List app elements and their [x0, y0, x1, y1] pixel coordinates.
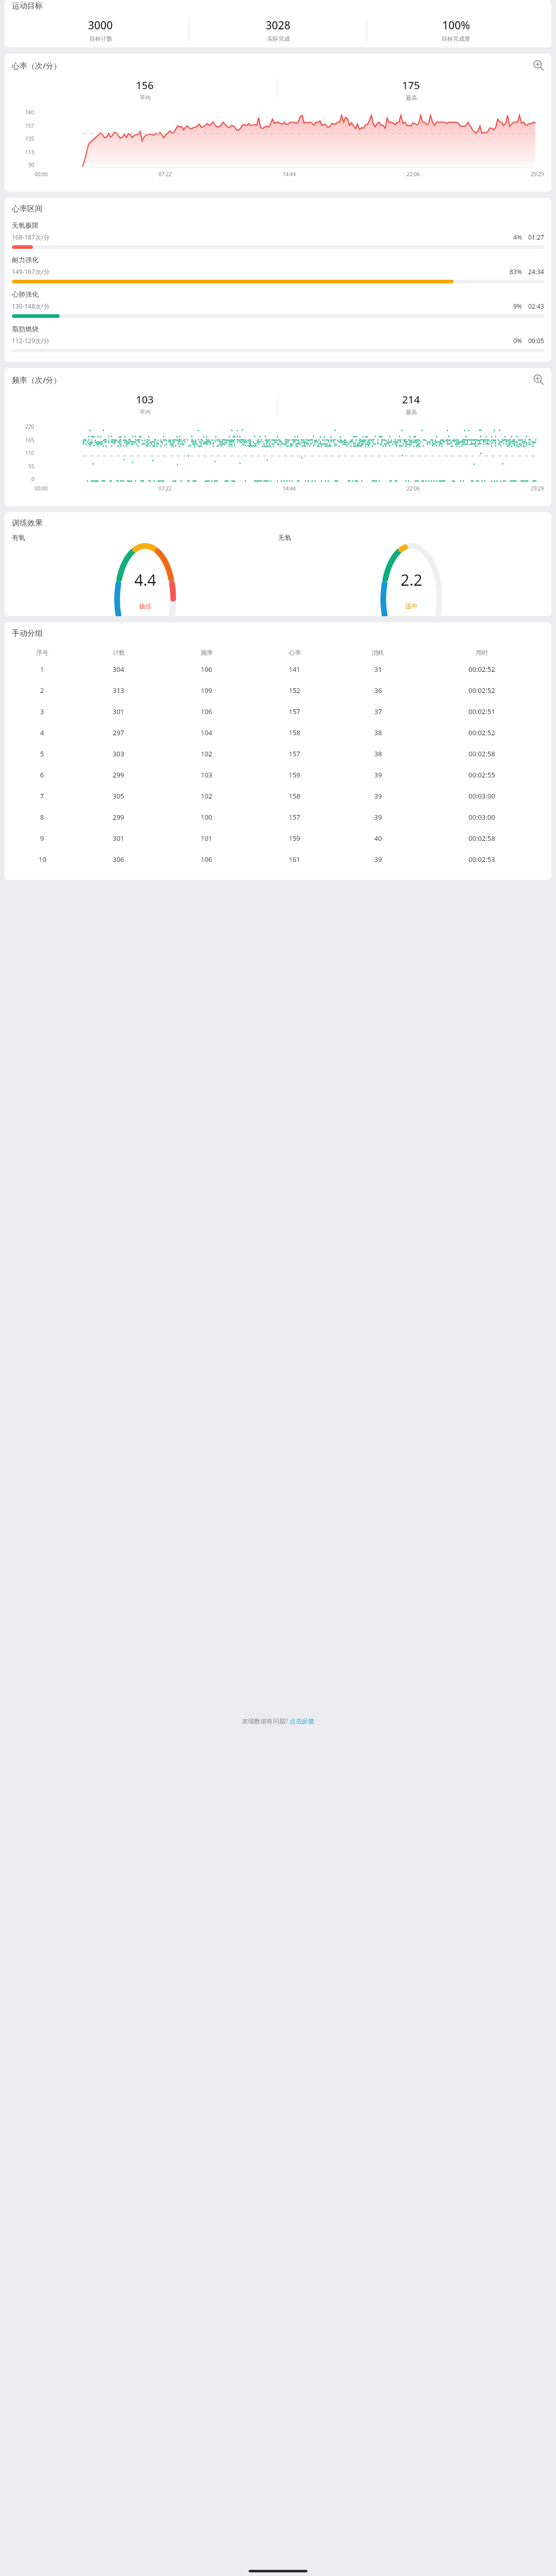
button[interactable]: 无氧极限	[12, 221, 544, 249]
button[interactable]: 5	[10, 749, 546, 758]
button[interactable]: 序号	[10, 649, 546, 656]
button[interactable]: 1	[10, 665, 546, 674]
staticText: 有氧	[12, 533, 25, 541]
staticText: 消耗	[372, 649, 384, 656]
staticText: 110	[25, 449, 34, 456]
staticText: 9%	[513, 302, 522, 310]
staticText: 29:29	[531, 171, 544, 178]
staticText: 14:44	[283, 485, 296, 492]
staticText: 最高	[406, 94, 417, 101]
staticText: 00:00	[34, 485, 48, 492]
staticText: 7	[40, 791, 44, 801]
button[interactable]: 3	[10, 707, 546, 716]
staticText: 平均	[140, 94, 151, 101]
staticText: 00:02:58	[468, 834, 495, 843]
staticText: 无氧极限	[12, 221, 39, 229]
staticText: 实际完成	[267, 35, 290, 42]
staticText: 149-167次/分	[12, 267, 50, 276]
staticText: 14:44	[283, 171, 296, 178]
staticText: 心率	[289, 649, 301, 656]
staticText: 83%	[510, 267, 522, 276]
staticText: 299	[113, 812, 125, 822]
staticText: 38	[374, 728, 382, 737]
staticText: 02:43	[528, 302, 544, 310]
staticText: 计数	[113, 649, 125, 656]
button[interactable]: 9	[10, 834, 546, 843]
staticText: 00:02:52	[468, 728, 495, 737]
button[interactable]: 脂肪燃烧	[12, 325, 544, 352]
staticText: 运动目标	[12, 1, 43, 11]
button[interactable]: Expand chart	[533, 374, 544, 385]
staticText: 发现数据有问题? 点击反馈	[242, 1717, 315, 1725]
staticText: 106	[201, 855, 213, 864]
button[interactable]: 4	[10, 728, 546, 737]
staticText: 29:29	[531, 485, 544, 492]
staticText: 8	[40, 812, 44, 822]
staticText: 157	[289, 812, 301, 822]
staticText: 序号	[36, 649, 48, 656]
staticText: 102	[201, 749, 213, 758]
staticText: 38	[374, 749, 382, 758]
staticText: 39	[374, 812, 382, 822]
staticText: 130-148次/分	[12, 302, 50, 310]
staticText: 109	[201, 686, 213, 695]
staticText: 频率（次/分）	[12, 375, 61, 385]
staticText: 39	[374, 855, 382, 864]
staticText: 00:02:51	[468, 707, 495, 716]
button[interactable]: 6	[10, 770, 546, 779]
staticText: 306	[113, 855, 125, 864]
button[interactable]: 发现数据有问题? 点击反馈	[239, 1714, 318, 1728]
staticText: 165	[25, 436, 34, 444]
button[interactable]: 2	[10, 686, 546, 695]
staticText: 303	[113, 749, 125, 758]
button[interactable]: 7	[10, 791, 546, 801]
staticText: 平均	[140, 409, 151, 416]
staticText: 1	[40, 665, 44, 674]
staticText: 00:02:52	[468, 686, 495, 695]
staticText: 106	[201, 665, 213, 674]
staticText: 22:06	[407, 171, 420, 178]
staticText: 104	[201, 728, 213, 737]
staticText: 00:03:00	[468, 791, 495, 801]
staticText: 2.2	[401, 569, 423, 590]
staticText: 101	[201, 834, 213, 843]
staticText: 304	[113, 665, 125, 674]
staticText: 频率	[201, 649, 213, 656]
staticText: 106	[201, 707, 213, 716]
staticText: 102	[201, 791, 213, 801]
staticText: 55	[28, 463, 34, 470]
staticText: 157	[289, 749, 301, 758]
staticText: 0%	[513, 336, 522, 345]
staticText: 手动分组	[12, 629, 43, 638]
button[interactable]: 4.4	[114, 543, 177, 610]
staticText: 4%	[513, 233, 522, 241]
staticText: 159	[289, 834, 301, 843]
staticText: 299	[113, 770, 125, 779]
staticText: 10	[39, 855, 46, 864]
button[interactable]: 耐力强化	[12, 256, 544, 283]
staticText: 159	[289, 770, 301, 779]
staticText: 40	[374, 834, 382, 843]
staticText: 220	[25, 423, 34, 430]
staticText: 158	[289, 728, 301, 737]
staticText: 157	[25, 122, 34, 129]
staticText: 168-187次/分	[12, 233, 50, 241]
staticText: 训练效果	[12, 518, 43, 528]
staticText: 3	[40, 707, 44, 716]
staticText: 00:03:00	[468, 812, 495, 822]
staticText: 3028	[266, 18, 291, 33]
staticText: 103	[201, 770, 213, 779]
staticText: 用时	[476, 649, 488, 656]
button[interactable]: 10	[10, 855, 546, 864]
staticText: 39	[374, 791, 382, 801]
staticText: 目标完成度	[442, 35, 470, 42]
staticText: 00:02:58	[468, 749, 495, 758]
staticText: 脂肪燃烧	[12, 325, 39, 333]
staticText: 175	[402, 78, 420, 92]
button[interactable]: 2.2	[380, 543, 443, 610]
button[interactable]: 心肺强化	[12, 290, 544, 318]
button[interactable]: Expand chart	[533, 60, 544, 71]
staticText: 最高	[406, 409, 417, 416]
button[interactable]: 8	[10, 812, 546, 822]
staticText: 适中	[405, 602, 418, 610]
